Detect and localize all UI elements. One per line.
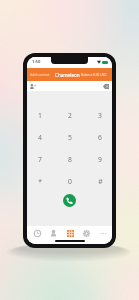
button[interactable]: 9: [84, 148, 112, 170]
button[interactable]: #: [84, 170, 112, 192]
button[interactable]: Add contact: [30, 72, 50, 77]
staticText: 4: [38, 133, 42, 142]
button[interactable]: 3: [84, 104, 112, 126]
button[interactable]: *: [27, 170, 56, 192]
button[interactable]: Recents: [30, 226, 44, 240]
button[interactable]: Balance 0.00 USD: [81, 73, 107, 77]
staticText: 8: [68, 155, 72, 164]
button[interactable]: 8: [56, 148, 84, 170]
button[interactable]: 7: [27, 148, 56, 170]
staticText: 0: [68, 177, 72, 186]
button[interactable]: Settings: [79, 226, 93, 240]
staticText: 2: [68, 111, 72, 120]
staticText: 9: [98, 155, 102, 164]
staticText: 1:50: [32, 59, 41, 65]
button[interactable]: 1: [27, 104, 56, 126]
button[interactable]: 5: [56, 126, 84, 148]
staticText: 6: [98, 133, 102, 142]
staticText: 7: [38, 155, 42, 164]
staticText: 3: [98, 111, 102, 120]
button[interactable]: More: [96, 226, 110, 240]
staticText: #: [98, 177, 103, 186]
staticText: 1: [38, 111, 42, 120]
button[interactable]: Add contact: [28, 82, 37, 91]
button[interactable]: 0: [56, 170, 84, 192]
button[interactable]: Dialpad: [63, 226, 77, 240]
staticText: Chameleon: [55, 72, 80, 78]
button[interactable]: Call: [63, 194, 76, 207]
button[interactable]: Contacts: [46, 226, 60, 240]
button[interactable]: 4: [27, 126, 56, 148]
button[interactable]: Backspace: [101, 82, 110, 91]
button[interactable]: 2: [56, 104, 84, 126]
staticText: *: [38, 177, 42, 186]
staticText: 5: [68, 133, 72, 142]
button[interactable]: 6: [84, 126, 112, 148]
